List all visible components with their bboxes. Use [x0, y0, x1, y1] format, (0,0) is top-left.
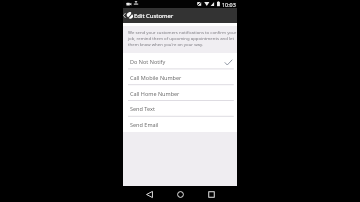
- button[interactable]: Do Not Notify: [123, 53, 237, 69]
- button[interactable]: Send Email: [123, 116, 237, 132]
- staticText: Do Not Notify: [130, 58, 166, 65]
- button[interactable]: Recent apps: [200, 186, 222, 202]
- button[interactable]: Back: [138, 186, 160, 202]
- button[interactable]: Call Home Number: [123, 85, 237, 101]
- staticText: Edit Customer: [134, 12, 174, 20]
- staticText: We send your customers notifications to …: [128, 29, 237, 35]
- staticText: 10:03: [222, 1, 236, 8]
- button[interactable]: Call Mobile Number: [123, 69, 237, 85]
- button[interactable]: Send Text: [123, 100, 237, 116]
- staticText: them know when you're on your way.: [128, 41, 204, 47]
- button[interactable]: Home: [169, 186, 191, 202]
- staticText: Send Text: [130, 105, 155, 112]
- staticText: job, remind them of upcoming appointment…: [128, 35, 235, 41]
- button[interactable]: Navigate up: [123, 8, 136, 23]
- staticText: Call Home Number: [130, 90, 180, 97]
- staticText: Send Email: [130, 121, 159, 128]
- staticText: Call Mobile Number: [130, 74, 182, 81]
